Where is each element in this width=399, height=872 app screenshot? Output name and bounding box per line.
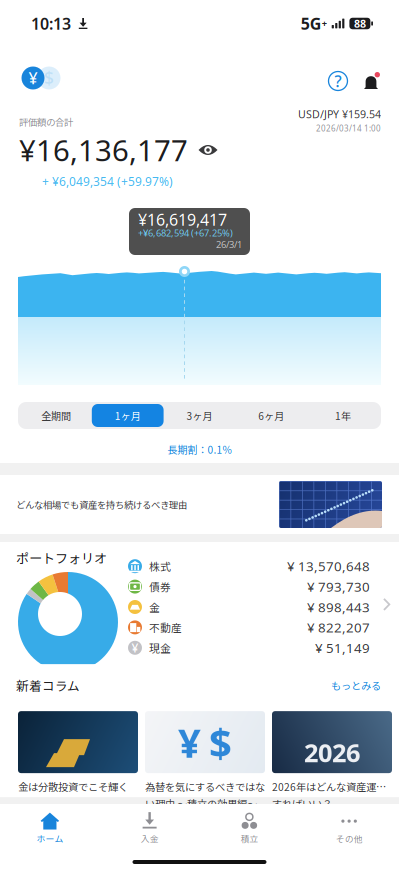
staticText: ¥ 898,443 (307, 598, 370, 616)
staticText: +¥6,682,594 (+67.25%) (138, 227, 233, 239)
staticText: 為替を気にするべきではな (145, 779, 265, 794)
staticText: 1ヶ月 (115, 408, 141, 423)
button[interactable]: Hide balance (198, 142, 218, 157)
staticText: 88 (354, 16, 366, 31)
staticText: ポートフォリオ (16, 548, 107, 567)
staticText: い理由 〜積立の効果編〜 (145, 796, 257, 811)
button[interactable]: Help (326, 69, 350, 93)
staticText: 現金 (149, 640, 171, 655)
staticText: ¥ 13,570,648 (287, 557, 370, 575)
staticText: $ (44, 66, 54, 89)
staticText: 2026 (304, 735, 360, 769)
staticText: 評価額の合計 (19, 115, 73, 128)
button[interactable]: ホーム (0, 804, 100, 852)
staticText: ¥16,619,417 (138, 209, 227, 230)
staticText: ホーム (36, 832, 63, 845)
staticText: 10:13 (31, 13, 71, 34)
staticText: 入金 (141, 832, 159, 845)
staticText: 不動産 (149, 620, 182, 635)
staticText: + ¥6,049,354 (+59.97%) (42, 173, 173, 189)
staticText: ¥ 51,149 (315, 639, 370, 657)
staticText: 金は分散投資でこそ輝く (18, 779, 128, 794)
button[interactable]: 積立 (199, 804, 299, 852)
staticText: 新着コラム (16, 676, 80, 694)
staticText: 債券 (149, 579, 171, 594)
staticText: すればいい？ (272, 796, 332, 811)
button[interactable]: もっとみる (331, 678, 381, 693)
staticText: 2026/03/14 1:00 (316, 123, 381, 134)
staticText: ¥ 793,730 (307, 578, 370, 595)
button[interactable]: Notifications (359, 69, 383, 93)
button[interactable]: その他 (299, 804, 399, 852)
staticText: 金 (149, 599, 160, 615)
button[interactable]: ¥ (145, 711, 265, 811)
button[interactable]: 2026 (272, 711, 392, 811)
staticText: その他 (336, 832, 363, 845)
staticText: ¥ (178, 716, 201, 769)
staticText: 3ヶ月 (186, 408, 212, 423)
button[interactable]: 1年 (307, 404, 379, 427)
staticText: 長期割：0.1% (167, 442, 231, 457)
button[interactable]: 6ヶ月 (235, 404, 307, 427)
staticText: ¥16,136,177 (19, 130, 188, 169)
staticText: $ (209, 716, 232, 769)
button[interactable]: 全期間 (20, 404, 92, 427)
staticText: 株式 (149, 558, 171, 574)
staticText: 6ヶ月 (258, 408, 284, 423)
staticText: 26/3/1 (216, 238, 242, 251)
staticText: ? (334, 70, 341, 92)
button[interactable]: Currency JPY USD (19, 65, 63, 91)
button[interactable]: どんな相場でも資産を持ち続けるべき理由 (0, 475, 399, 534)
staticText: USD/JPY ¥159.54 (298, 107, 381, 121)
staticText: + (322, 17, 327, 30)
staticText: ¥ 822,207 (307, 618, 370, 636)
staticText: 2026年はどんな資産運用を (272, 779, 392, 794)
button[interactable]: ポートフォリオ (0, 542, 399, 665)
button[interactable]: 1ヶ月 (92, 404, 164, 427)
staticText: ¥ (28, 67, 37, 89)
staticText: 1年 (335, 408, 351, 423)
button[interactable]: 金は分散投資でこそ輝く (18, 711, 138, 811)
staticText: ¥ (131, 640, 138, 656)
staticText: 5G (301, 13, 322, 34)
button[interactable]: 入金 (100, 804, 200, 852)
staticText: もっとみる (331, 678, 381, 693)
button[interactable]: 3ヶ月 (164, 404, 235, 427)
staticText: どんな相場でも資産を持ち続けるべき理由 (16, 498, 187, 511)
staticText: 積立 (240, 832, 258, 845)
staticText: 全期間 (41, 408, 71, 423)
